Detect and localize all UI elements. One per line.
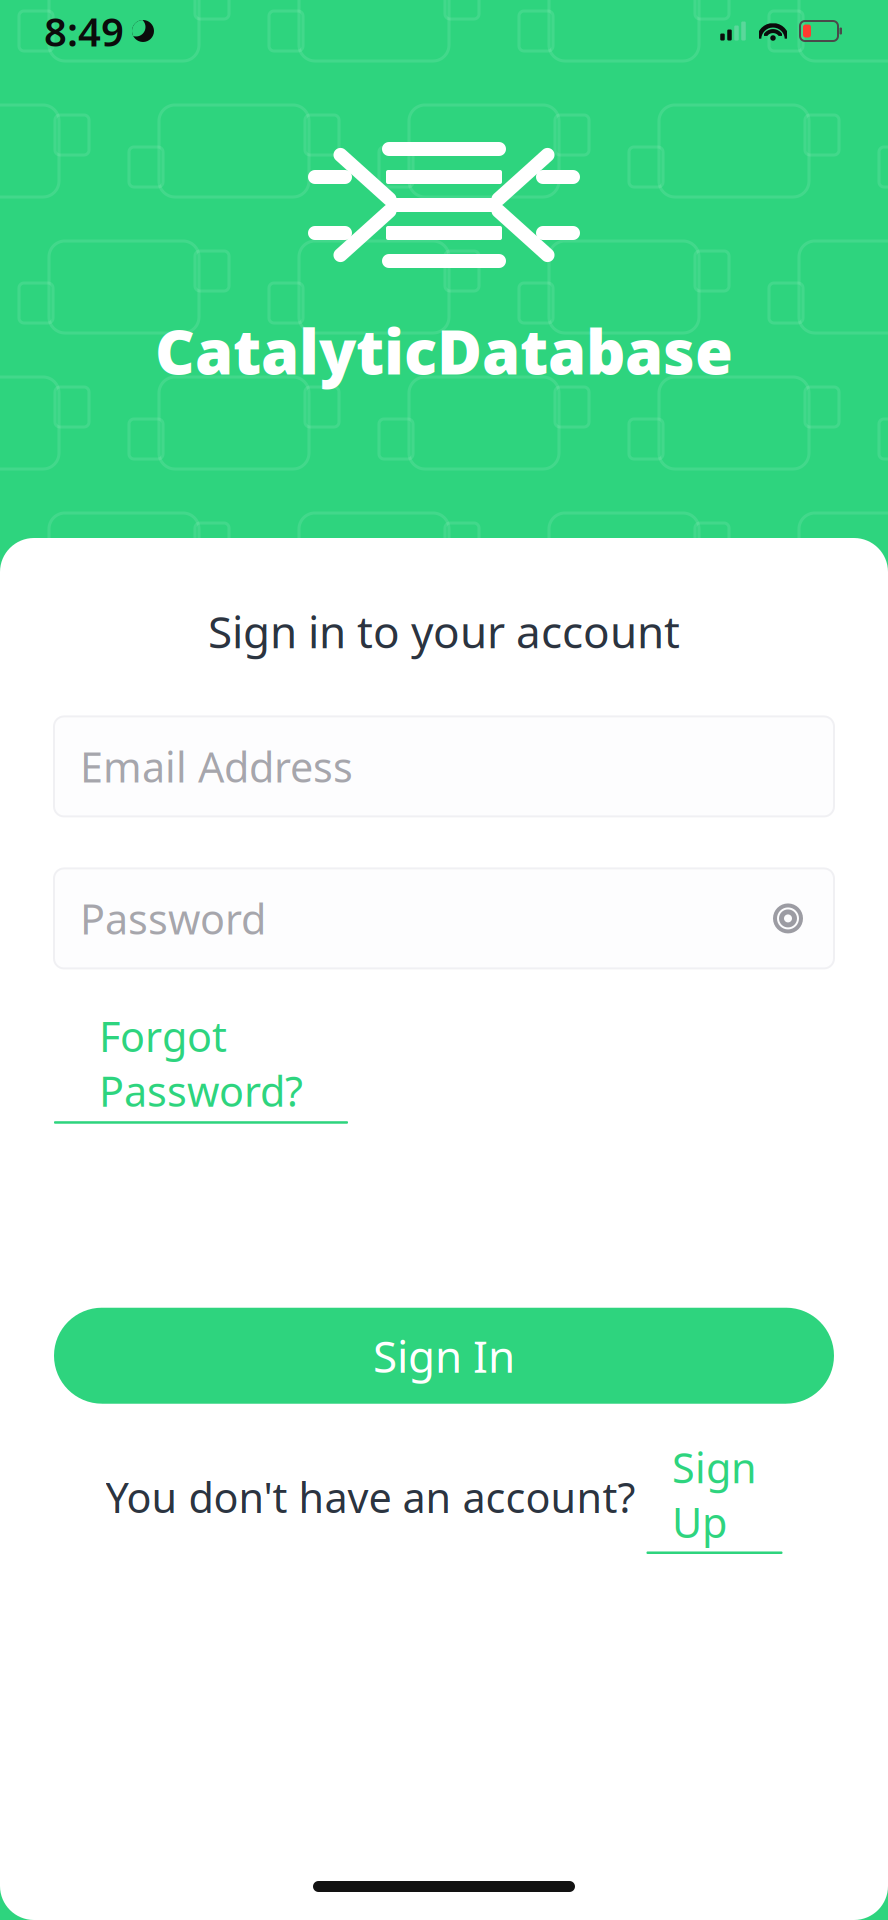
staticText: You don't have an account? [105, 1469, 646, 1524]
staticText: Sign In [373, 1326, 515, 1385]
staticText: Sign Up [672, 1440, 757, 1549]
button[interactable]: Sign Up [646, 1440, 782, 1554]
staticText: Sign in to your account [208, 602, 680, 660]
button[interactable]: Show password [760, 890, 816, 946]
button[interactable]: Sign In [54, 1308, 834, 1404]
button[interactable]: Forgot Password? [54, 1008, 348, 1124]
staticText: CatalyticDatabase [155, 310, 733, 391]
staticText: 8:49 [44, 4, 124, 57]
staticText: Forgot Password? [99, 1008, 303, 1118]
staticText: Email Address [80, 739, 353, 794]
staticText: Password [80, 891, 266, 946]
